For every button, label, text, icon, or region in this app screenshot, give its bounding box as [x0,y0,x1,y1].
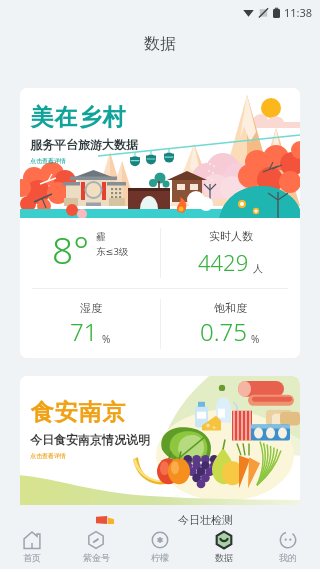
staticText: 实时人数 [209,229,253,243]
button[interactable]: 首页 [0,525,64,569]
staticText: 0.75 [200,315,247,348]
staticText: 点击查看详情 [30,157,66,165]
staticText: 紫金号 [83,552,110,563]
button[interactable]: 食安南京 [20,376,300,545]
button[interactable]: 紫金号 [64,525,128,569]
button[interactable]: 数据 [192,525,256,569]
staticText: 首页 [23,552,41,563]
staticText: 点击查看详情 [30,452,66,460]
staticText: % [102,332,111,346]
staticText: 今日食安南京情况说明 [30,432,150,447]
staticText: % [251,332,260,346]
staticText: 11:38 [284,5,313,20]
staticText: 美在乡村 [30,103,126,132]
staticText: 人 [253,262,263,275]
staticText: 食安南京 [30,398,126,427]
staticText: 数据 [144,34,176,54]
staticText: 8° [52,224,89,274]
button[interactable]: 柠檬 [128,525,192,569]
staticText: 今日壮检测 [178,513,233,527]
staticText: 我的 [279,552,297,563]
button[interactable]: 美在乡村 [20,88,300,358]
staticText: 湿度 [80,301,102,315]
button[interactable]: 我的 [256,525,320,569]
staticText: 柠檬 [151,552,169,563]
staticText: 饱和度 [214,301,247,315]
staticText: 东≤3级 [96,245,129,258]
staticText: 71 [70,315,98,348]
staticText: 数据 [215,552,233,563]
staticText: 服务平台旅游大数据 [30,137,138,152]
staticText: 霾 [96,231,106,243]
staticText: 4429 [198,247,249,277]
